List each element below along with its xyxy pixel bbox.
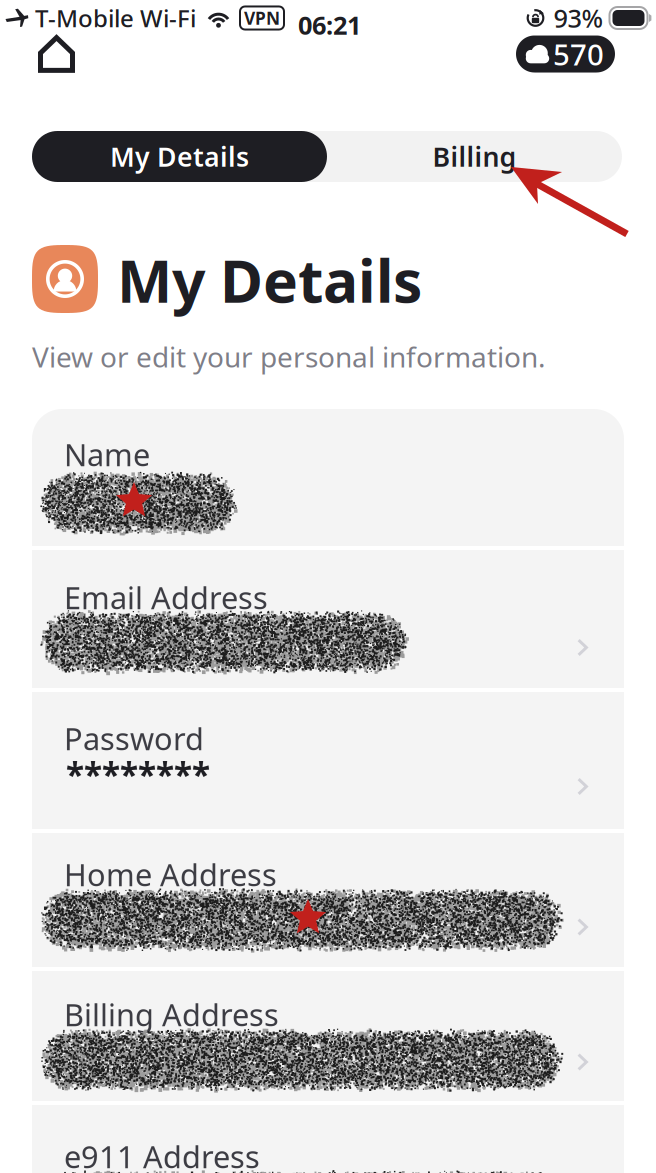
staticText: Name <box>64 434 150 475</box>
staticText: 570 <box>553 34 604 73</box>
staticText: View or edit your personal information. <box>32 338 546 375</box>
staticText: My Details <box>117 241 422 319</box>
button[interactable]: Home <box>38 35 82 73</box>
button[interactable]: e911 Address <box>32 1105 624 1173</box>
button[interactable]: My Details <box>32 131 327 182</box>
button[interactable]: Home Address <box>32 833 624 967</box>
button[interactable]: Name <box>32 409 624 546</box>
staticText: e911 Address <box>64 1136 260 1173</box>
button[interactable]: Email Address <box>32 550 624 688</box>
staticText: Email Address <box>64 577 268 618</box>
staticText: T-Mobile Wi-Fi <box>35 2 196 34</box>
staticText: VPN <box>244 6 280 29</box>
staticText: Home Address <box>64 854 277 895</box>
staticText: ******** <box>66 752 210 796</box>
button[interactable]: Billing Address <box>32 971 624 1101</box>
staticText: 93% <box>553 1 603 35</box>
button[interactable]: Billing <box>327 131 622 182</box>
staticText: Password <box>64 718 204 759</box>
staticText: 06:21 <box>298 8 361 42</box>
button[interactable]: 570 cloud credits <box>516 35 615 72</box>
button[interactable]: Password <box>32 692 624 829</box>
staticText: Billing <box>432 139 516 174</box>
staticText: My Details <box>110 139 249 174</box>
staticText: Billing Address <box>64 994 279 1035</box>
